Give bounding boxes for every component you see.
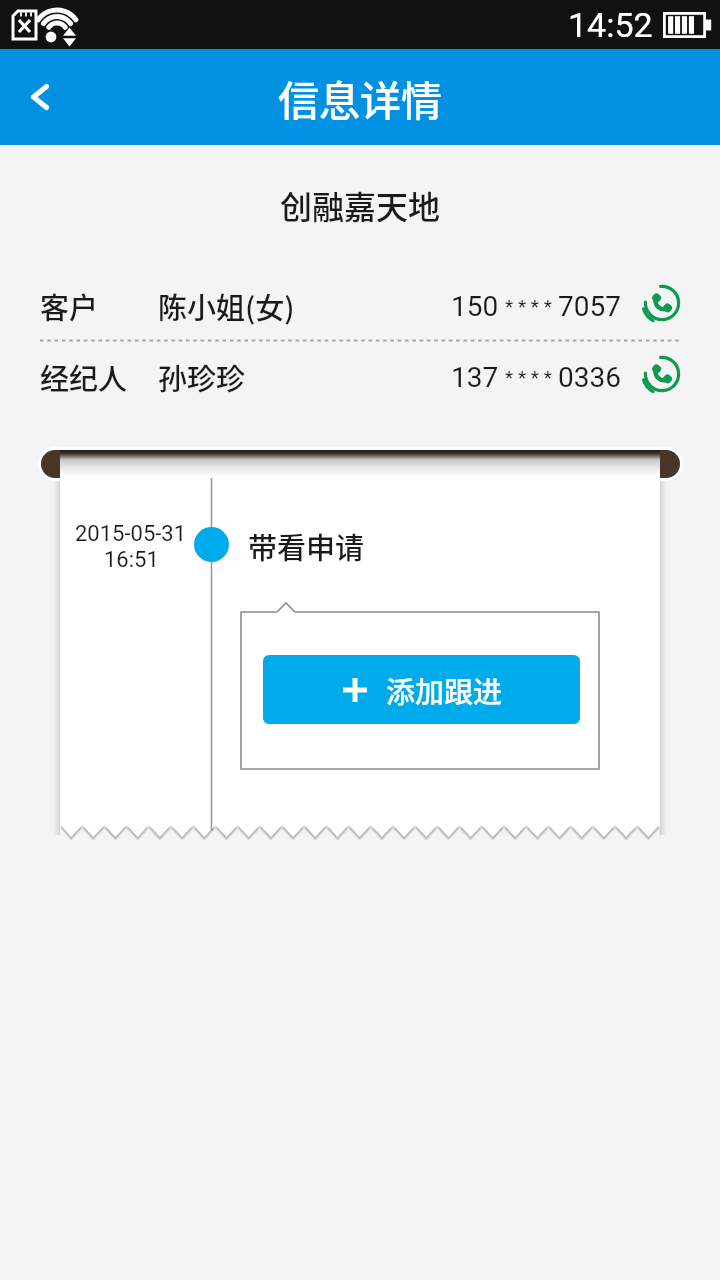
button[interactable]: Call [636, 348, 688, 400]
staticText: 创融嘉天地 [0, 182, 720, 228]
staticText: * * * * [505, 295, 552, 317]
staticText: 2015-05-31 [75, 521, 187, 547]
staticText: 137 [451, 361, 499, 394]
staticText: 0336 [558, 361, 621, 394]
staticText: 添加跟进 [386, 669, 503, 711]
button[interactable]: 添加跟进 [263, 655, 580, 724]
staticText: 150 [451, 290, 499, 323]
staticText: 7057 [558, 290, 621, 323]
staticText: 14:52 [568, 5, 653, 45]
staticText: 信息详情 [278, 68, 442, 127]
staticText: 16:51 [104, 547, 159, 573]
staticText: 陈小姐(女) [158, 285, 295, 327]
button[interactable]: 经纪人 [0, 342, 720, 412]
staticText: 孙珍珍 [158, 356, 246, 398]
staticText: 经纪人 [40, 356, 128, 398]
button[interactable]: 客户 [0, 271, 720, 341]
button[interactable]: Back [0, 49, 88, 145]
staticText: 客户 [40, 285, 99, 327]
staticText: * * * * [505, 366, 552, 388]
button[interactable]: Call [636, 277, 688, 329]
staticText: 带看申请 [248, 525, 365, 567]
